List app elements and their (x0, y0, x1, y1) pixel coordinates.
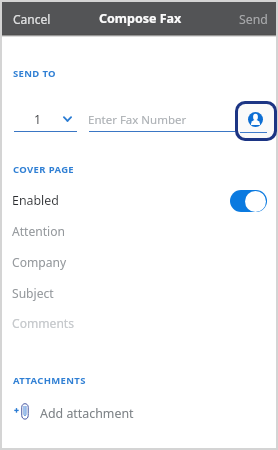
button[interactable]: 1 (12, 106, 78, 134)
button[interactable]: Comments (2, 310, 276, 338)
staticText: ATTACHMENTS (13, 374, 86, 387)
staticText: Add attachment (40, 405, 134, 422)
staticText: Send (239, 11, 268, 25)
button[interactable]: Add attachment (2, 399, 276, 425)
staticText: Attention (12, 223, 66, 239)
button[interactable]: Send (228, 2, 276, 34)
staticText: SEND TO (13, 67, 56, 80)
staticText: Comments (12, 315, 75, 331)
button[interactable]: Choose contact (238, 104, 274, 138)
button[interactable]: Subject (2, 280, 276, 308)
button[interactable]: Company (2, 249, 276, 277)
button[interactable]: Cancel (2, 2, 62, 34)
staticText: 1 (34, 111, 42, 128)
button[interactable]: Enabled (2, 186, 276, 214)
staticText: Enter Fax Number (88, 112, 187, 128)
staticText: Enabled (12, 192, 59, 209)
staticText: Company (12, 254, 67, 270)
staticText: Cancel (13, 11, 51, 25)
staticText: Subject (12, 285, 54, 301)
button[interactable]: Enter Fax Number (87, 106, 274, 134)
staticText: Compose Fax (99, 10, 182, 27)
button[interactable]: Attention (2, 218, 276, 246)
staticText: COVER PAGE (13, 163, 75, 176)
